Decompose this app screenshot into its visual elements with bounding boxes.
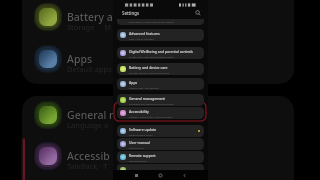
staticText: User manual <box>129 146 144 149</box>
button[interactable]: Remote support <box>117 151 204 163</box>
button[interactable]: Apps <box>117 78 204 90</box>
button[interactable]: Software update <box>117 125 204 137</box>
staticText: Remote support <box>129 153 156 158</box>
button[interactable]: Advanced features <box>117 29 204 41</box>
staticText: TalkBack, Mono audio, Assistant menu <box>129 115 173 118</box>
button[interactable]: User manual <box>117 138 204 150</box>
staticText: Accessib <box>67 149 110 163</box>
staticText: Accessibility <box>129 109 149 114</box>
staticText: Download and install <box>129 133 153 136</box>
staticText: Screen time, App timers, Bedtime mode <box>129 55 174 58</box>
staticText: General m <box>67 108 120 122</box>
staticText: Language and keyboard, Date and time <box>129 102 174 105</box>
button[interactable]: Back <box>179 170 190 180</box>
staticText: Labs, Link to Windows <box>129 37 154 40</box>
staticText: Remote support <box>129 159 148 162</box>
staticText: Apps <box>129 80 138 85</box>
staticText: Apps <box>67 52 93 66</box>
staticText: Battery and device care <box>129 65 168 70</box>
button[interactable]: Search <box>193 8 203 18</box>
staticText: Language a <box>67 120 109 130</box>
staticText: General management <box>129 96 165 101</box>
staticText: Digital Wellbeing and parental controls <box>129 49 194 54</box>
staticText: Battery a <box>67 10 113 24</box>
button[interactable]: Digital Wellbeing and parental controls <box>117 47 204 59</box>
button[interactable]: Accessibility <box>117 107 204 119</box>
staticText: Notifications, Status bar, Do not distur… <box>128 20 175 23</box>
staticText: Settings <box>122 10 140 16</box>
button[interactable]: Battery and device care <box>117 63 204 75</box>
staticText: Storage · M <box>67 22 111 32</box>
staticText: Advanced features <box>129 31 160 36</box>
staticText: User manual <box>129 140 150 145</box>
staticText: TalkBack · T <box>67 161 108 171</box>
staticText: Default apps, App settings <box>129 86 159 89</box>
staticText: Default apps <box>67 64 112 74</box>
staticText: Storage, Memory, Device protection <box>129 71 170 74</box>
button[interactable]: General management <box>117 94 204 106</box>
button[interactable]: Home <box>155 170 166 180</box>
staticText: Software update <box>129 127 157 132</box>
button[interactable]: Recents <box>131 170 142 180</box>
